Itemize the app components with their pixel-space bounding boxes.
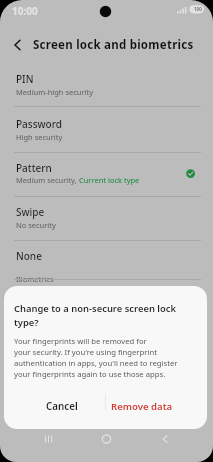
staticText: None bbox=[16, 249, 42, 263]
staticText: 10:00 bbox=[12, 4, 38, 18]
staticText: Current lock type bbox=[79, 175, 140, 185]
staticText: type? bbox=[14, 316, 39, 329]
staticText: Medium-high security bbox=[16, 87, 94, 97]
staticText: Pattern bbox=[16, 161, 52, 175]
staticText: Swipe bbox=[16, 205, 45, 219]
button[interactable] bbox=[105, 386, 207, 429]
button[interactable]: None bbox=[0, 241, 213, 276]
button[interactable]: Pattern bbox=[0, 152, 213, 197]
staticText: authentication in apps, you'll need to r… bbox=[14, 358, 178, 368]
staticText: 100 bbox=[194, 6, 202, 12]
staticText: Screen lock and biometrics bbox=[33, 37, 194, 53]
button[interactable]: Swipe bbox=[0, 196, 213, 241]
staticText: Change to a non-secure screen lock bbox=[14, 302, 177, 315]
staticText: Cancel bbox=[46, 400, 78, 413]
staticText: Biometrics bbox=[16, 274, 54, 284]
button[interactable]: Password bbox=[0, 107, 213, 152]
staticText: Remove data bbox=[111, 400, 173, 413]
button[interactable] bbox=[6, 33, 30, 57]
staticText: Your fingerprints will be removed for bbox=[14, 336, 147, 346]
button[interactable] bbox=[4, 386, 105, 429]
staticText: Medium security, bbox=[16, 175, 79, 185]
button[interactable] bbox=[34, 424, 64, 454]
staticText: High security bbox=[16, 132, 63, 142]
staticText: your security. If you're using fingerpri… bbox=[14, 347, 157, 357]
staticText: Password bbox=[16, 117, 62, 131]
button[interactable]: PIN bbox=[0, 62, 213, 107]
staticText: PIN bbox=[16, 72, 34, 86]
button[interactable] bbox=[91, 424, 121, 454]
button[interactable] bbox=[150, 424, 180, 454]
staticText: your fingerprints again to use those app… bbox=[14, 369, 166, 379]
staticText: No security bbox=[16, 220, 56, 230]
